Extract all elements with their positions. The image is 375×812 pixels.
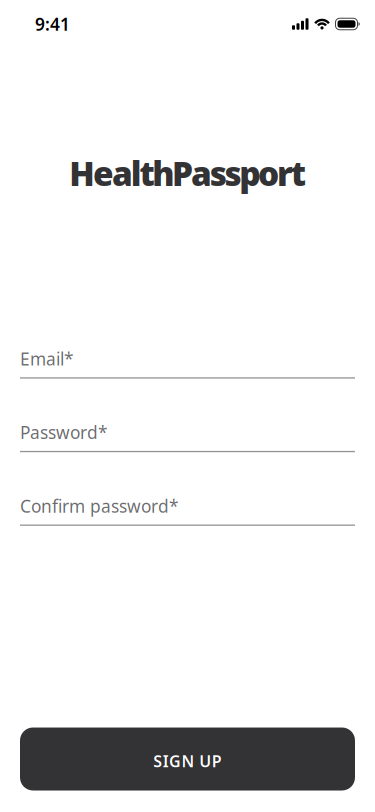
- button[interactable]: Email*: [20, 347, 355, 379]
- staticText: SIGN UP: [153, 750, 222, 772]
- button[interactable]: Password*: [20, 421, 355, 452]
- button[interactable]: Confirm password*: [20, 494, 355, 526]
- button[interactable]: SIGN UP: [20, 727, 355, 790]
- staticText: 9:41: [35, 12, 70, 35]
- staticText: Email*: [20, 347, 74, 370]
- staticText: HealthPassport: [69, 151, 306, 195]
- staticText: Confirm password*: [20, 494, 179, 517]
- staticText: Password*: [20, 421, 108, 444]
